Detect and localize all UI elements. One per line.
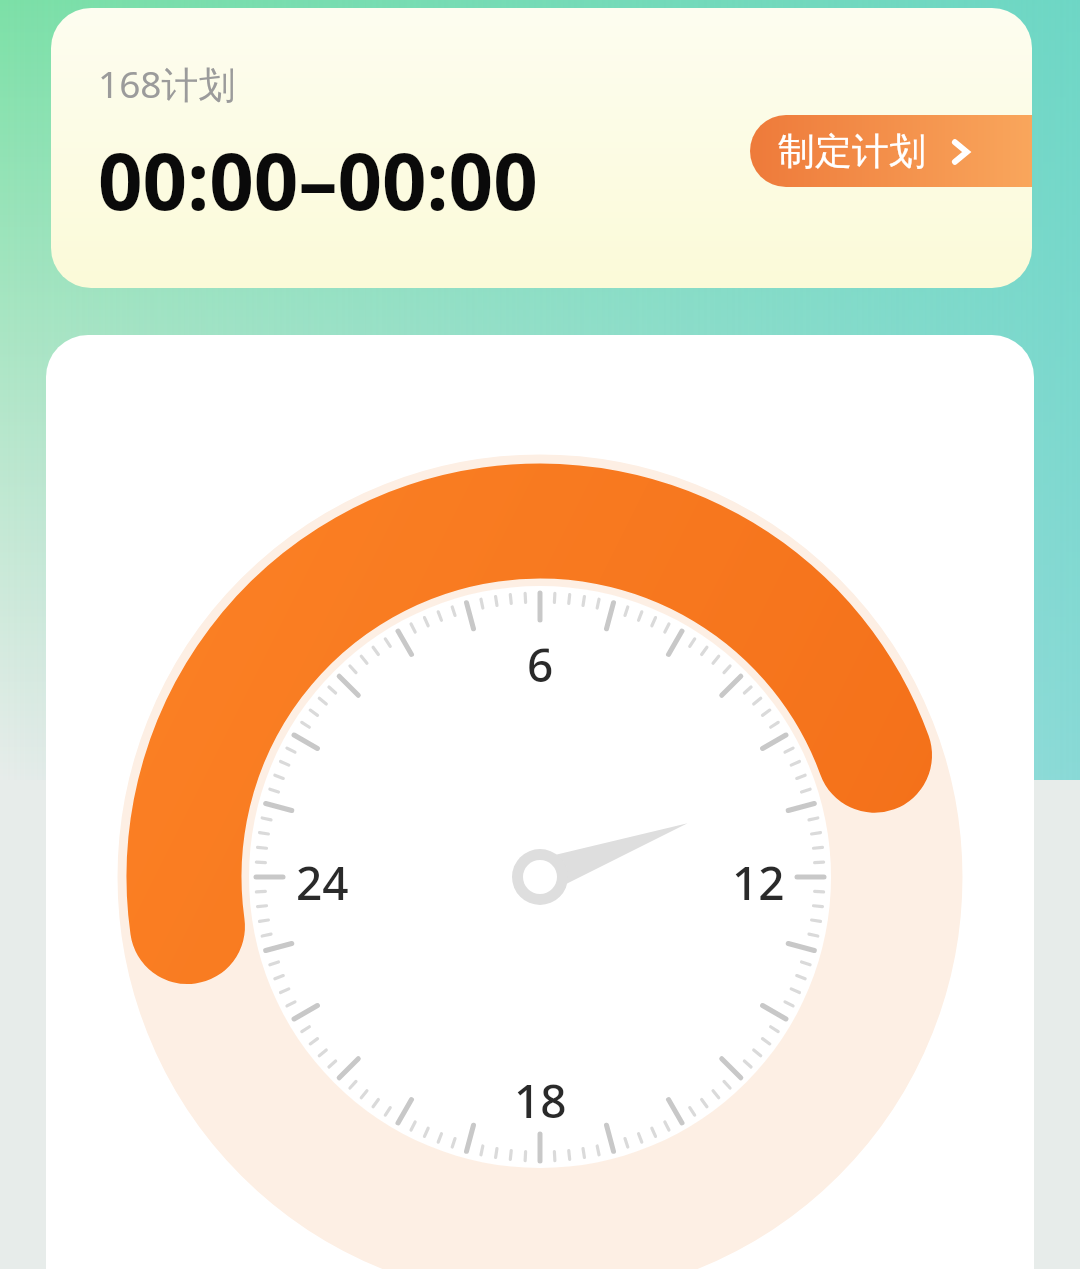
staticText: 168计划 bbox=[98, 58, 236, 109]
staticText: 18 bbox=[514, 1069, 567, 1132]
staticText: 制定计划 bbox=[778, 128, 926, 175]
staticText: 24 bbox=[296, 851, 349, 914]
staticText: 6 bbox=[527, 633, 554, 696]
staticText: 00:00–00:00 bbox=[98, 127, 538, 233]
button[interactable]: 制定计划 bbox=[750, 115, 1032, 187]
staticText: 12 bbox=[732, 851, 785, 914]
button[interactable]: 168计划 bbox=[51, 8, 1032, 288]
